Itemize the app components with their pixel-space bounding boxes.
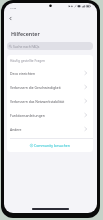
staticText: Community besuchen	[34, 143, 71, 148]
staticText: Hilfecenter	[11, 30, 40, 37]
button[interactable]: Andere	[7, 122, 93, 136]
staticText: Andere	[10, 127, 84, 132]
button[interactable]: Verbessern das Netzwerkstabilität	[7, 94, 93, 108]
button[interactable]: Community besuchen	[7, 139, 93, 152]
staticText: Verbessern die Geschwindigkeit	[10, 85, 84, 90]
staticText: Suche nach FAQs	[13, 44, 40, 48]
staticText: Deco einrichten	[10, 71, 84, 76]
button[interactable]: Suche nach FAQs	[7, 42, 93, 50]
button[interactable]: Verbessern die Geschwindigkeit	[7, 80, 93, 94]
button[interactable]: Deco einrichten	[7, 66, 93, 80]
staticText: Funktionsanleitungen	[10, 113, 84, 118]
staticText: Verbessern das Netzwerkstabilität	[10, 99, 84, 104]
button[interactable]: Back	[6, 14, 14, 22]
staticText: 13:36	[10, 6, 17, 9]
staticText: Häufig gestellte Fragen	[10, 59, 45, 63]
button[interactable]: Funktionsanleitungen	[7, 108, 93, 122]
